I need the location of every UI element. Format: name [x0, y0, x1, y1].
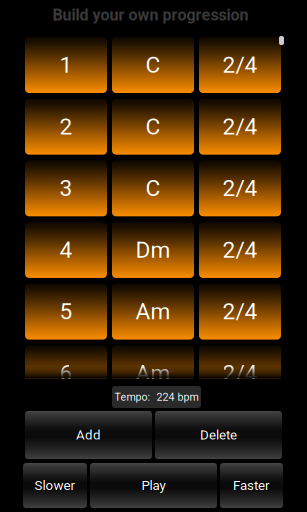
button[interactable]: 2/4: [199, 99, 281, 155]
staticText: Am: [135, 298, 170, 325]
button[interactable]: C: [112, 37, 194, 93]
button[interactable]: 2/4: [199, 345, 281, 401]
staticText: 2/4: [222, 113, 257, 140]
staticText: 2/4: [222, 237, 257, 263]
staticText: 3: [59, 175, 72, 202]
button[interactable]: Slower: [23, 463, 87, 508]
staticText: 2/4: [222, 175, 257, 202]
button[interactable]: Faster: [220, 463, 283, 508]
button[interactable]: 2/4: [199, 222, 281, 278]
button[interactable]: Delete: [155, 411, 282, 459]
staticText: Faster: [233, 478, 270, 493]
staticText: 2/4: [222, 52, 257, 78]
button[interactable]: Add: [25, 411, 152, 459]
button[interactable]: 6: [25, 345, 107, 401]
button[interactable]: Play: [90, 463, 217, 508]
staticText: Dm: [135, 237, 170, 263]
button[interactable]: Am: [112, 345, 194, 401]
staticText: 2/4: [222, 298, 257, 325]
staticText: 1: [59, 52, 72, 78]
button[interactable]: C: [112, 160, 194, 216]
staticText: 6: [59, 360, 72, 387]
button[interactable]: 3: [25, 160, 107, 216]
staticText: 2/4: [222, 360, 257, 387]
staticText: C: [145, 113, 160, 140]
staticText: Am: [135, 360, 170, 387]
staticText: 4: [59, 237, 72, 263]
staticText: C: [145, 175, 160, 202]
staticText: Play: [141, 478, 165, 493]
button[interactable]: 2/4: [199, 160, 281, 216]
button[interactable]: 1: [25, 37, 107, 93]
button[interactable]: Dm: [112, 222, 194, 278]
button[interactable]: C: [112, 99, 194, 155]
staticText: Build your own progression: [52, 6, 248, 24]
button[interactable]: Am: [112, 284, 194, 340]
staticText: 5: [59, 298, 72, 325]
button[interactable]: 2/4: [199, 284, 281, 340]
staticText: 2: [59, 113, 72, 140]
staticText: C: [145, 52, 160, 78]
button[interactable]: 4: [25, 222, 107, 278]
staticText: Tempo: 224 bpm: [114, 391, 198, 403]
button[interactable]: 2/4: [199, 37, 281, 93]
staticText: Slower: [34, 478, 75, 493]
staticText: Add: [76, 427, 101, 443]
staticText: Delete: [200, 427, 237, 443]
button[interactable]: 5: [25, 284, 107, 340]
button[interactable]: 2: [25, 99, 107, 155]
